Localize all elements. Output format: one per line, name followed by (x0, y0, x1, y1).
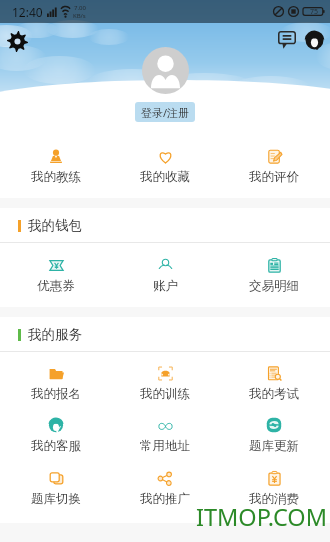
button[interactable]: 设置 (4, 28, 30, 54)
button[interactable]: 常用地址 (112, 417, 218, 453)
button[interactable]: 我的收藏 (112, 148, 218, 184)
button[interactable]: 我的消费 (221, 470, 327, 506)
staticText: 常用地址 (140, 438, 190, 453)
button[interactable]: 我的报名 (3, 365, 109, 401)
staticText: 账户 (153, 278, 178, 293)
button[interactable]: 登录/注册 (135, 102, 195, 122)
staticText: 我的考试 (249, 386, 299, 401)
button[interactable]: 账户 (112, 257, 218, 293)
staticText: 我的收藏 (140, 169, 190, 184)
staticText: 我的客服 (31, 438, 81, 453)
button[interactable]: 我的推广 (112, 470, 218, 506)
staticText: 75 (310, 7, 319, 17)
button[interactable]: 我的教练 (3, 148, 109, 184)
button[interactable]: 我的客服 (3, 417, 109, 453)
button[interactable] (142, 47, 189, 94)
button[interactable]: 我的训练 (112, 365, 218, 401)
staticText: 登录/注册 (141, 105, 190, 120)
button[interactable]: 题库切换 (3, 470, 109, 506)
staticText: 我的服务 (28, 326, 82, 343)
staticText: 我的教练 (31, 169, 81, 184)
staticText: 我的报名 (31, 386, 81, 401)
staticText: 我的消费 (249, 491, 299, 506)
staticText: 7.00 (74, 4, 86, 12)
button[interactable]: 优惠券 (3, 257, 109, 293)
button[interactable]: 我的考试 (221, 365, 327, 401)
staticText: ITMOP.COM (196, 501, 328, 533)
staticText: 我的训练 (140, 386, 190, 401)
staticText: KB/s (73, 12, 86, 20)
button[interactable]: 交易明细 (221, 257, 327, 293)
staticText: 12:40 (12, 4, 43, 20)
button[interactable]: 客服 (302, 28, 326, 52)
button[interactable]: 消息 (275, 28, 299, 52)
button[interactable]: 我的评价 (221, 148, 327, 184)
staticText: 题库切换 (31, 491, 81, 506)
staticText: 题库更新 (249, 438, 299, 453)
staticText: 我的钱包 (28, 217, 82, 234)
button[interactable]: 题库更新 (221, 417, 327, 453)
staticText: 我的评价 (249, 169, 299, 184)
staticText: 我的推广 (140, 491, 190, 506)
staticText: 优惠券 (37, 278, 75, 293)
staticText: 交易明细 (249, 278, 299, 293)
